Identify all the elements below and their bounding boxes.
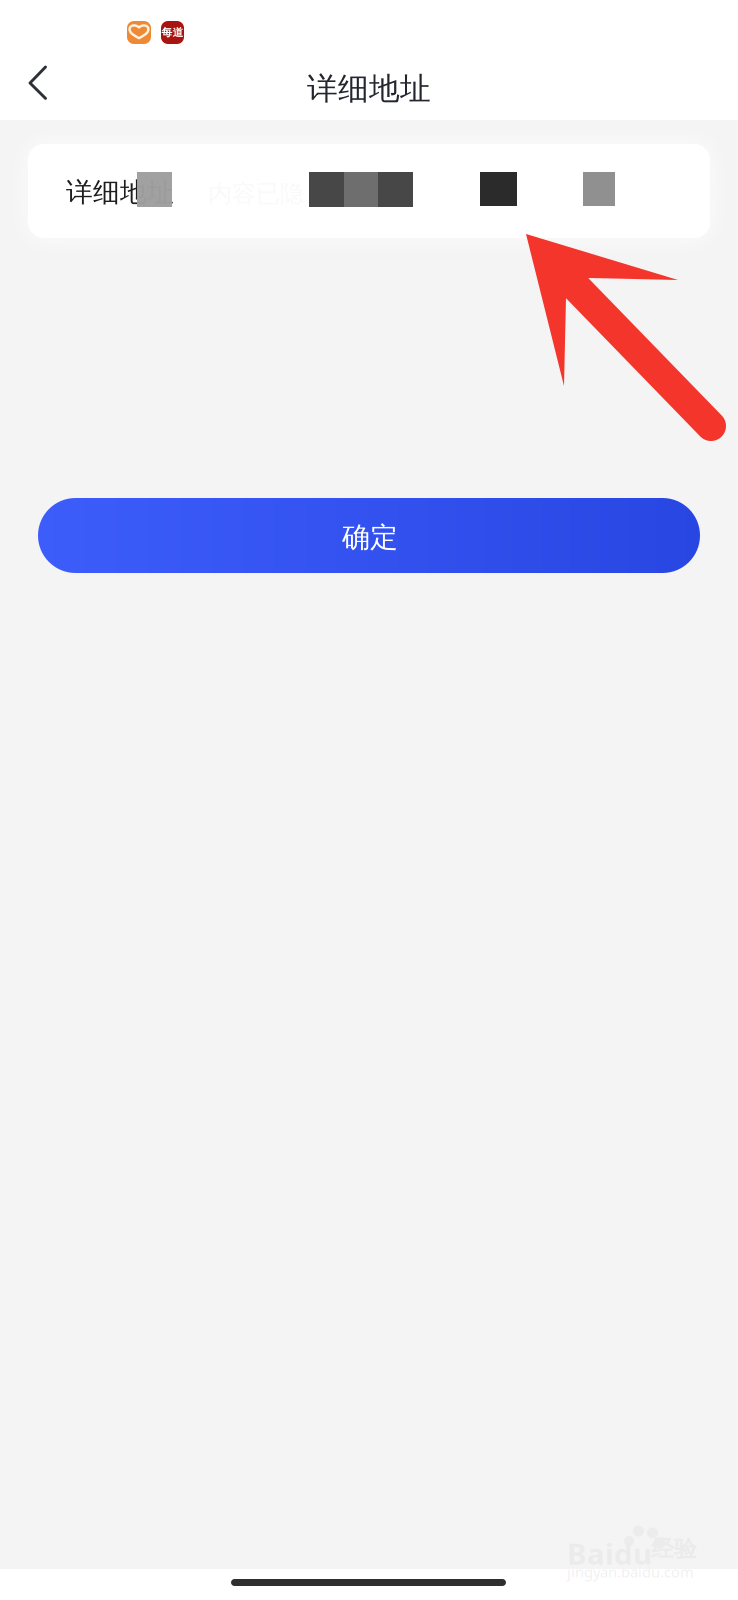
staticText: 确定 (342, 520, 398, 555)
button[interactable]: 确定 (38, 498, 700, 573)
staticText: jingyan.baidu.com (567, 1562, 694, 1581)
button[interactable]: 详细地址 (28, 144, 710, 238)
button[interactable]: Back (0, 50, 74, 116)
staticText: Baidu (567, 1534, 652, 1573)
staticText: 详细地址 (66, 176, 174, 209)
staticText: 每道 (161, 26, 183, 39)
staticText: 详细地址 (307, 70, 431, 108)
staticText: 经验 (651, 1535, 697, 1563)
